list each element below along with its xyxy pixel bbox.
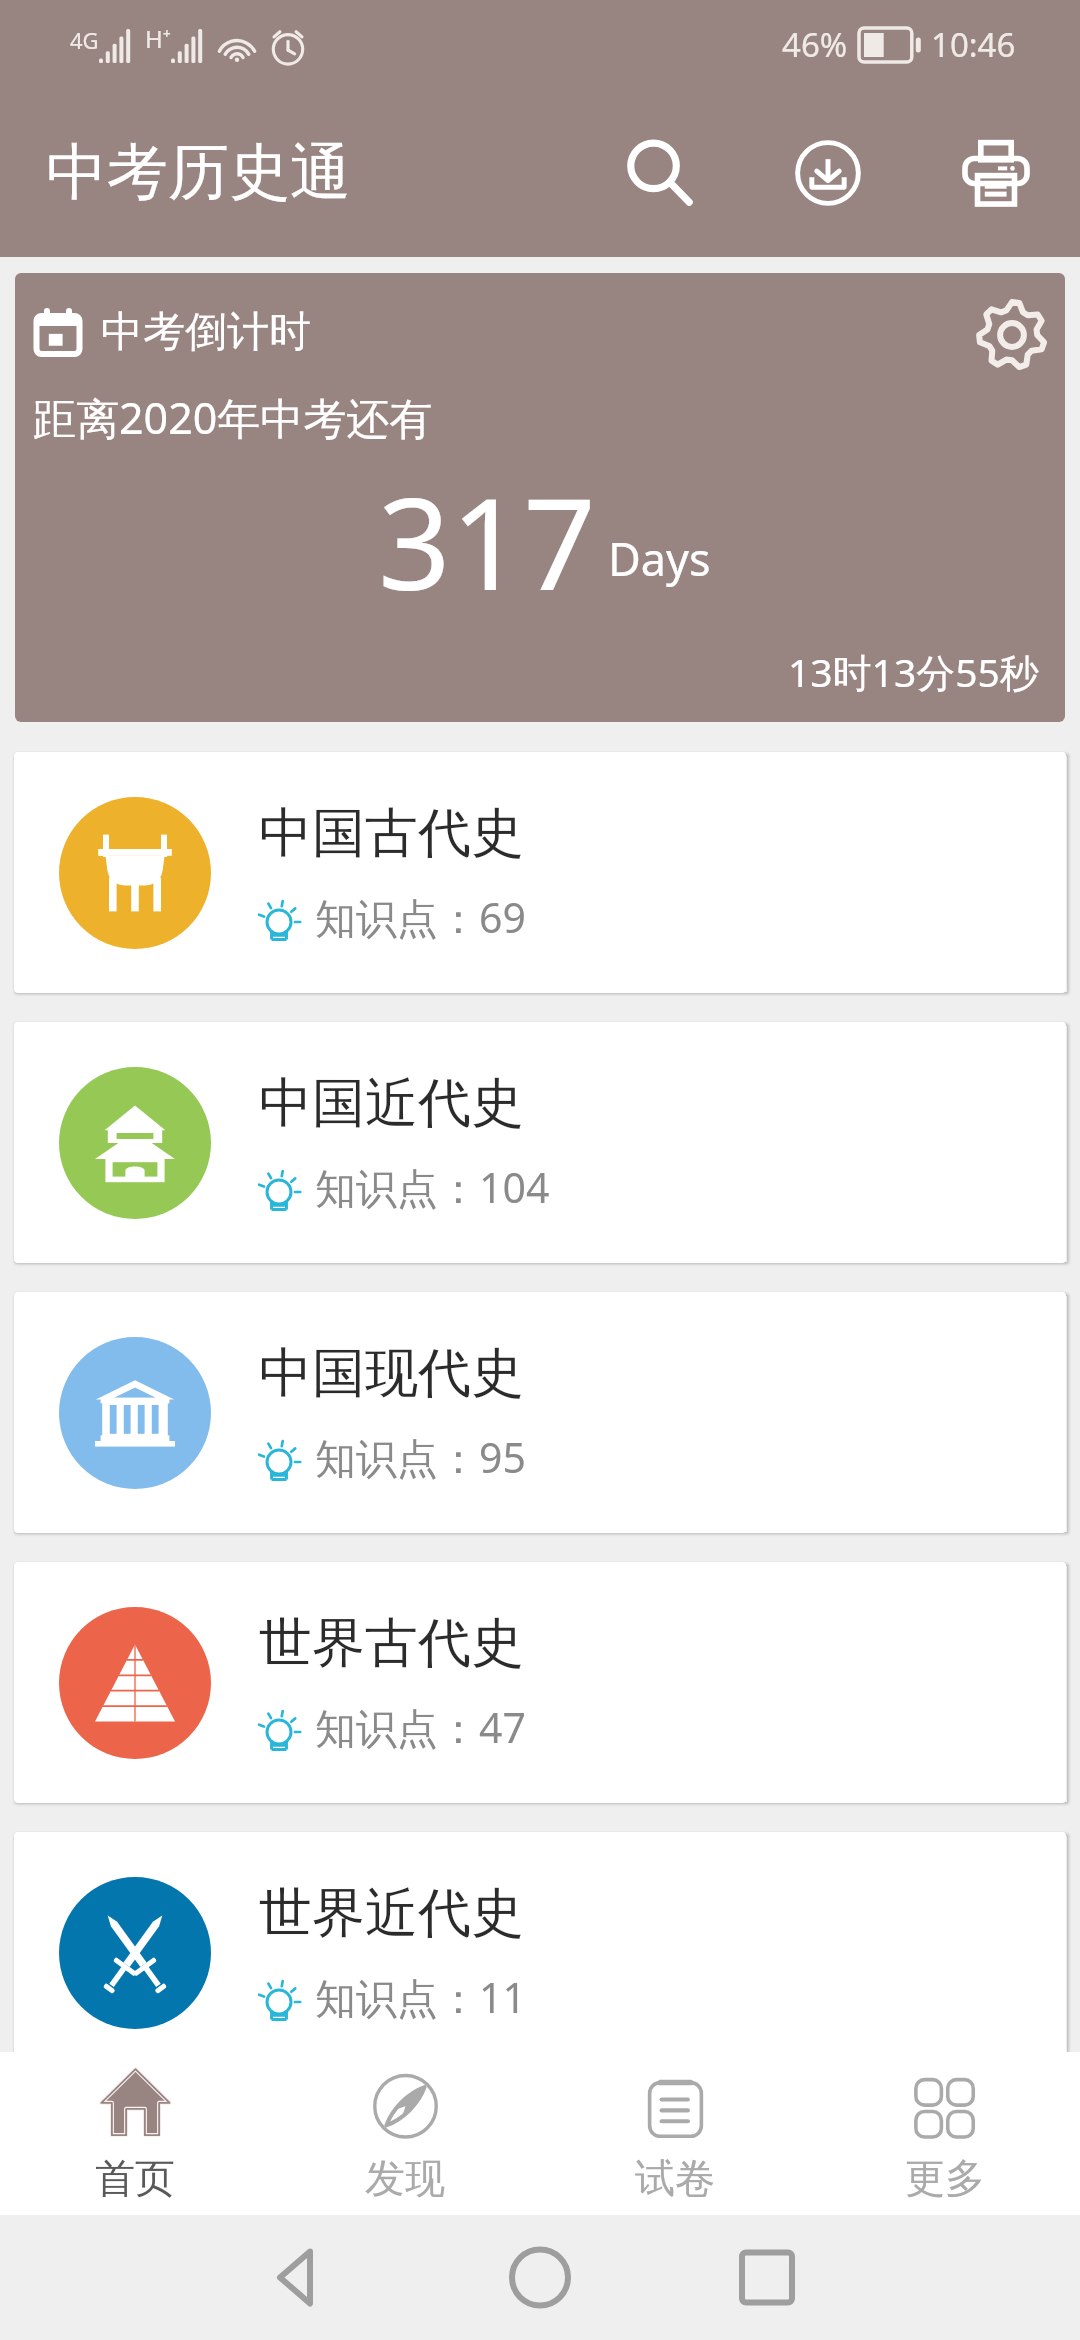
staticText: 距离2020年中考还有 bbox=[33, 388, 433, 447]
staticText: 中国现代史 bbox=[259, 1340, 524, 1407]
button[interactable]: 中国近代史 bbox=[14, 1022, 1066, 1263]
button[interactable]: Settings bbox=[963, 286, 1061, 384]
button[interactable]: Print bbox=[912, 89, 1080, 257]
staticText: 317 bbox=[378, 454, 596, 627]
button[interactable]: 试卷 bbox=[540, 2052, 810, 2215]
button[interactable]: 中考倒计时 bbox=[15, 273, 1065, 722]
button[interactable]: Download bbox=[744, 89, 912, 257]
staticText: 10:46 bbox=[931, 22, 1016, 67]
staticText: 46% bbox=[782, 22, 848, 67]
staticText: Days bbox=[608, 528, 711, 589]
staticText: 知识点：95 bbox=[315, 1429, 526, 1485]
staticText: 中国古代史 bbox=[259, 800, 524, 867]
button[interactable]: 中国古代史 bbox=[14, 752, 1066, 993]
staticText: 知识点：104 bbox=[315, 1159, 550, 1215]
staticText: 4G bbox=[70, 25, 99, 55]
button[interactable]: 中国现代史 bbox=[14, 1292, 1066, 1533]
staticText: 试卷 bbox=[635, 2153, 715, 2203]
staticText: 中考倒计时 bbox=[101, 306, 311, 359]
button[interactable]: 更多 bbox=[810, 2052, 1080, 2215]
staticText: 13时13分55秒 bbox=[788, 645, 1039, 698]
staticText: 知识点：47 bbox=[315, 1699, 526, 1755]
staticText: 中考历史通 bbox=[46, 134, 351, 211]
staticText: 知识点：11 bbox=[315, 1969, 526, 2025]
button[interactable]: Search bbox=[576, 89, 744, 257]
staticText: 发现 bbox=[365, 2153, 445, 2203]
staticText: 更多 bbox=[905, 2153, 985, 2203]
staticText: 知识点：69 bbox=[315, 889, 526, 945]
staticText: 中国近代史 bbox=[259, 1070, 524, 1137]
staticText: 世界古代史 bbox=[259, 1610, 524, 1677]
button[interactable]: 发现 bbox=[270, 2052, 540, 2215]
button[interactable]: 世界古代史 bbox=[14, 1562, 1066, 1803]
staticText: H⁺ bbox=[145, 22, 171, 55]
staticText: 世界近代史 bbox=[259, 1880, 524, 1947]
button[interactable]: 世界近代史 bbox=[14, 1832, 1066, 2052]
button[interactable]: 首页 bbox=[0, 2052, 270, 2215]
staticText: 首页 bbox=[95, 2153, 175, 2203]
